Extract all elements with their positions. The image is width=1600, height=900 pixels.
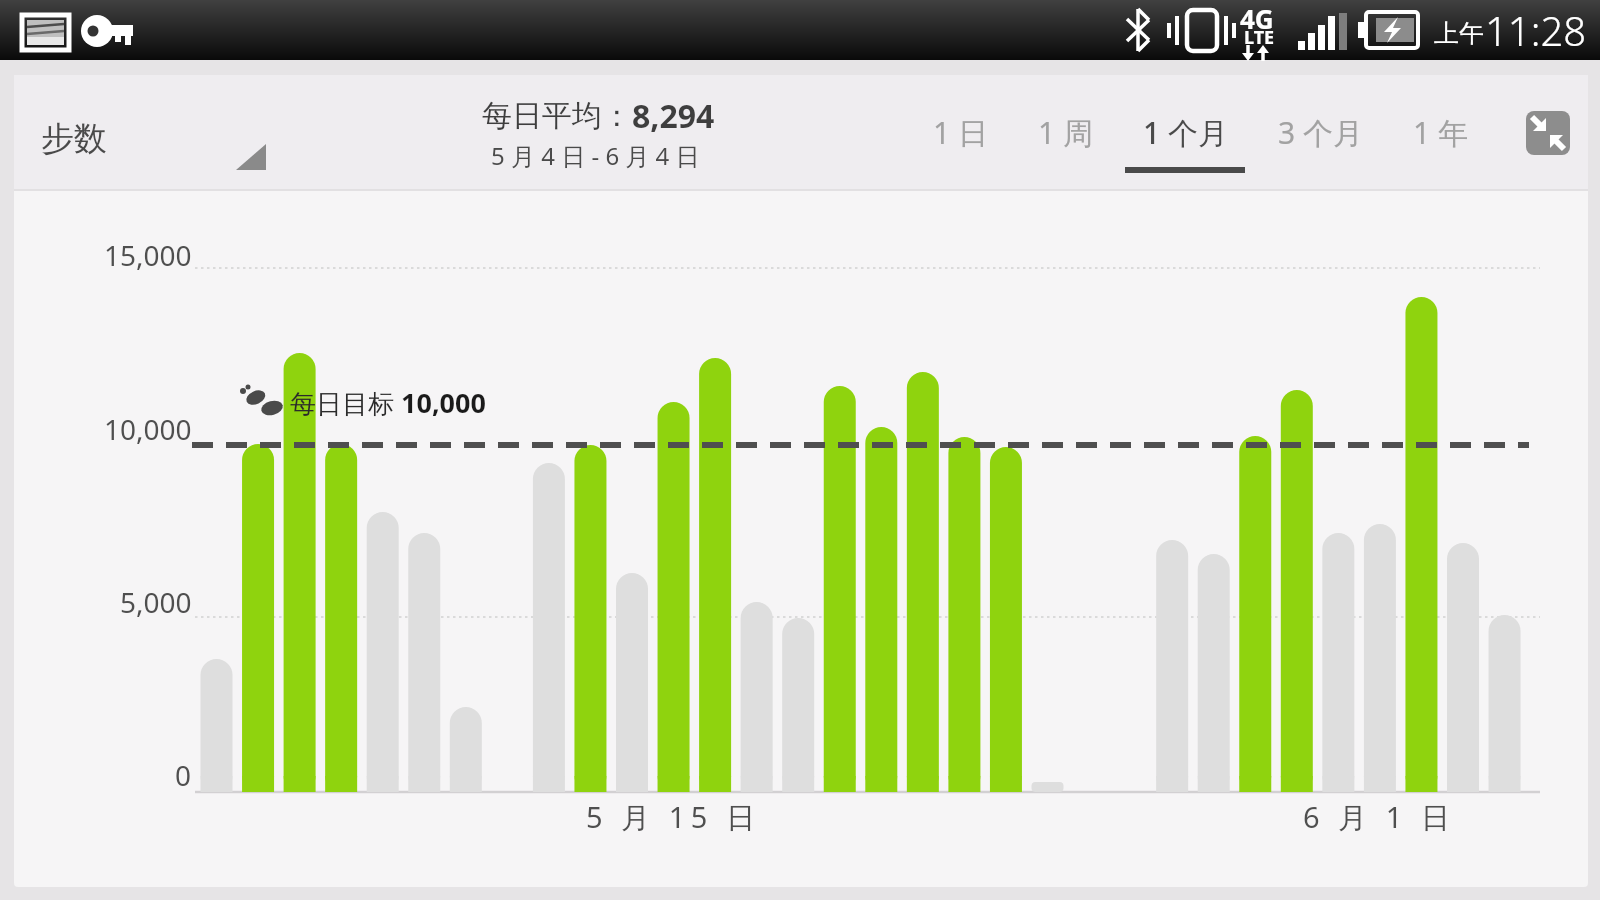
button[interactable]: 3 个月 xyxy=(1255,101,1385,163)
staticText: 每日平均： xyxy=(482,97,632,135)
staticText: 1 年 xyxy=(1413,112,1468,153)
staticText: 1 个月 xyxy=(1143,112,1228,153)
button[interactable]: 1 个月 xyxy=(1120,101,1250,163)
staticText: 8,294 xyxy=(632,94,715,138)
staticText: 1 日 xyxy=(933,112,988,153)
button[interactable]: 1 年 xyxy=(1375,101,1505,163)
staticText: 15,000 xyxy=(104,236,192,274)
staticText: 11:28 xyxy=(1485,3,1587,57)
staticText: 4G xyxy=(1240,1,1274,31)
staticText: LTE xyxy=(1244,25,1275,49)
button[interactable] xyxy=(1526,111,1570,155)
staticText: 6 月 1 日 xyxy=(1303,797,1456,837)
staticText: 5 月 4 日 - 6 月 4 日 xyxy=(491,139,700,172)
staticText: 5,000 xyxy=(120,583,192,621)
staticText: 3 个月 xyxy=(1278,112,1363,153)
staticText: 5 月 15 日 xyxy=(586,797,761,837)
staticText: 10,000 xyxy=(104,410,192,448)
staticText: 1 周 xyxy=(1038,112,1093,153)
button[interactable]: 步数 xyxy=(20,100,280,178)
staticText: 步数 xyxy=(41,118,107,160)
staticText: 每日目标 xyxy=(290,385,401,421)
button[interactable]: 1 日 xyxy=(895,101,1025,163)
button[interactable]: 1 周 xyxy=(1000,101,1130,163)
staticText: 0 xyxy=(175,756,192,794)
staticText: 上午 xyxy=(1434,18,1484,49)
staticText: 10,000 xyxy=(401,384,486,421)
